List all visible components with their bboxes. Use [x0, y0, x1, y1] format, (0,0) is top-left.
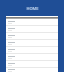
- button[interactable]: [6, 19, 58, 25]
- button[interactable]: [6, 61, 58, 67]
- button[interactable]: [6, 54, 58, 60]
- button[interactable]: [6, 40, 58, 46]
- button[interactable]: [6, 47, 58, 53]
- button[interactable]: [6, 26, 58, 32]
- staticText: HOME: [26, 6, 39, 11]
- button[interactable]: [6, 68, 58, 72]
- button[interactable]: [6, 33, 58, 39]
